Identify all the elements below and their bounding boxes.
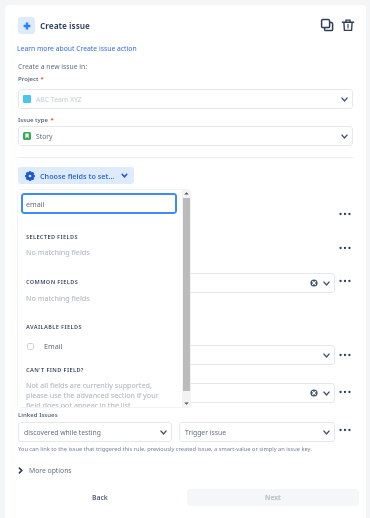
- staticText: Linked Issues: [18, 411, 58, 419]
- button[interactable]: More options: [16, 463, 72, 477]
- button[interactable]: discovered while testing: [18, 422, 172, 442]
- staticText: Email: [44, 341, 63, 351]
- staticText: Issue type: [18, 116, 49, 124]
- staticText: Project: [18, 75, 39, 83]
- button[interactable]: Duplicate: [316, 14, 338, 36]
- button[interactable]: More actions: [338, 207, 351, 220]
- staticText: No matching fields: [26, 293, 90, 303]
- staticText: *: [39, 75, 44, 83]
- button[interactable]: Delete: [337, 14, 359, 36]
- staticText: Not all fields are currently supported, …: [26, 380, 166, 408]
- button[interactable]: Email: [27, 340, 147, 352]
- button[interactable]: Story: [18, 126, 353, 146]
- button[interactable]: More actions: [338, 348, 351, 361]
- button[interactable]: Back: [18, 489, 182, 506]
- staticText: COMMON FIELDS: [26, 278, 79, 286]
- staticText: More options: [29, 466, 72, 475]
- button[interactable]: More actions: [338, 423, 351, 436]
- button[interactable]: Choose fields to set...: [18, 167, 134, 184]
- button[interactable]: [165, 383, 335, 403]
- staticText: SELECTED FIELDS: [26, 233, 78, 241]
- button[interactable]: ABC Team XYZ: [18, 89, 353, 109]
- button[interactable]: email: [21, 193, 177, 214]
- staticText: No matching fields: [26, 247, 90, 257]
- staticText: Choose fields to set...: [40, 171, 115, 181]
- staticText: You can link to the issue that triggered…: [18, 445, 312, 453]
- staticText: Learn more about Create issue action: [17, 44, 137, 53]
- staticText: discovered while testing: [24, 428, 101, 437]
- button[interactable]: Trigger issue: [179, 422, 335, 442]
- staticText: Story: [36, 132, 53, 141]
- staticText: email: [26, 199, 45, 209]
- staticText: *: [49, 116, 54, 124]
- staticText: Trigger issue: [185, 428, 227, 437]
- staticText: CAN'T FIND FIELD?: [26, 366, 84, 374]
- staticText: Next: [265, 493, 281, 502]
- staticText: AVAILABLE FIELDS: [26, 323, 82, 331]
- button[interactable]: Learn more about Create issue action: [17, 44, 137, 53]
- staticText: Create a new issue in:: [18, 62, 88, 71]
- button[interactable]: More actions: [338, 385, 351, 398]
- button[interactable]: [165, 273, 335, 293]
- button[interactable]: [165, 345, 335, 365]
- button[interactable]: Next: [187, 489, 359, 506]
- staticText: Create issue: [40, 20, 90, 31]
- staticText: Back: [92, 493, 108, 502]
- button[interactable]: More actions: [338, 241, 351, 254]
- button[interactable]: More actions: [338, 274, 351, 287]
- staticText: ABC Team XYZ: [36, 95, 82, 104]
